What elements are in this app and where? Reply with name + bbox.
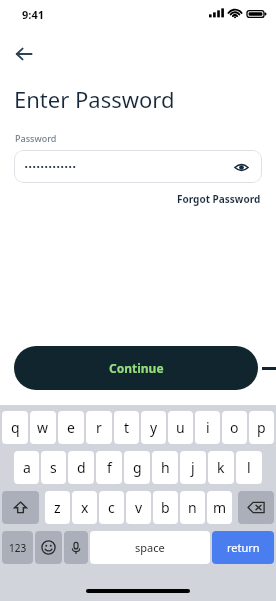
- button[interactable]: m: [207, 491, 232, 524]
- staticText: r: [96, 418, 102, 437]
- staticText: d: [77, 458, 86, 477]
- button[interactable]: c: [99, 491, 124, 524]
- staticText: t: [124, 418, 130, 437]
- staticText: u: [176, 418, 185, 437]
- button[interactable]: a: [14, 451, 39, 484]
- button[interactable]: b: [153, 491, 178, 524]
- button[interactable]: Back: [8, 38, 40, 70]
- button[interactable]: h: [152, 451, 178, 484]
- button[interactable]: 123: [2, 531, 33, 564]
- button[interactable]: return: [212, 531, 274, 564]
- button[interactable]: Show password: [14, 150, 262, 183]
- button[interactable]: k: [208, 451, 234, 484]
- button[interactable]: l: [236, 451, 262, 484]
- staticText: space: [135, 540, 165, 555]
- staticText: return: [227, 540, 260, 555]
- staticText: c: [108, 498, 115, 517]
- staticText: e: [67, 418, 75, 437]
- staticText: Enter Password: [14, 84, 175, 114]
- staticText: k: [217, 458, 225, 477]
- button[interactable]: z: [45, 491, 70, 524]
- button[interactable]: space: [90, 531, 210, 564]
- button[interactable]: Emoji: [35, 531, 62, 564]
- staticText: j: [191, 458, 195, 477]
- staticText: z: [54, 498, 61, 517]
- button[interactable]: v: [126, 491, 151, 524]
- button[interactable]: g: [124, 451, 150, 484]
- staticText: g: [133, 458, 142, 477]
- button[interactable]: Shift: [2, 491, 39, 524]
- button[interactable]: o: [222, 411, 247, 444]
- staticText: b: [161, 498, 170, 517]
- button[interactable]: Voice input: [64, 531, 88, 564]
- button[interactable]: w: [30, 411, 56, 444]
- button[interactable]: j: [180, 451, 206, 484]
- button[interactable]: n: [180, 491, 205, 524]
- button[interactable]: Forgot Password: [177, 192, 261, 206]
- button[interactable]: f: [96, 451, 122, 484]
- staticText: q: [11, 418, 20, 437]
- staticText: x: [81, 498, 89, 517]
- staticText: Password: [15, 132, 57, 144]
- staticText: w: [37, 418, 49, 437]
- staticText: n: [188, 498, 197, 517]
- button[interactable]: Delete: [238, 491, 274, 524]
- staticText: 9:41: [22, 7, 44, 22]
- button[interactable]: x: [72, 491, 97, 524]
- staticText: p: [257, 418, 266, 437]
- button[interactable]: d: [68, 451, 94, 484]
- button[interactable]: t: [114, 411, 139, 444]
- button[interactable]: q: [2, 411, 28, 444]
- button[interactable]: e: [58, 411, 84, 444]
- staticText: Continue: [109, 360, 164, 376]
- button[interactable]: r: [86, 411, 112, 444]
- staticText: l: [247, 458, 251, 477]
- button[interactable]: s: [41, 451, 66, 484]
- staticText: 123: [9, 541, 27, 555]
- button[interactable]: Continue: [14, 346, 258, 390]
- staticText: o: [230, 418, 239, 437]
- staticText: h: [161, 458, 170, 477]
- staticText: s: [50, 458, 57, 477]
- staticText: a: [23, 458, 31, 477]
- button[interactable]: y: [141, 411, 166, 444]
- staticText: y: [150, 418, 158, 437]
- button[interactable]: Show password: [231, 157, 251, 177]
- staticText: i: [206, 418, 210, 437]
- button[interactable]: p: [249, 411, 274, 444]
- staticText: v: [135, 498, 143, 517]
- button[interactable]: u: [168, 411, 193, 444]
- button[interactable]: i: [195, 411, 220, 444]
- staticText: f: [107, 458, 112, 477]
- staticText: m: [213, 498, 227, 517]
